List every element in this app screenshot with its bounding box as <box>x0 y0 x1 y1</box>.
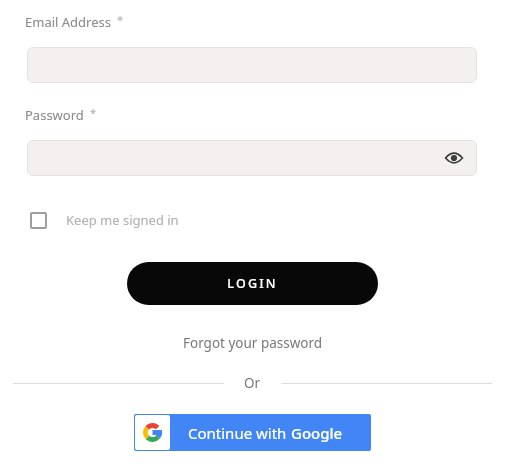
button[interactable]: Keep me signed in <box>24 206 185 234</box>
staticText: LOGIN <box>227 275 278 292</box>
staticText: Password <box>25 106 84 124</box>
staticText: Forgot your password <box>183 334 323 352</box>
staticText: Email Address <box>25 13 111 31</box>
button[interactable] <box>27 47 477 83</box>
staticText: Or <box>244 374 261 392</box>
button[interactable]: Continue with <box>134 414 371 451</box>
button[interactable]: Forgot your password <box>175 331 331 355</box>
staticText: * <box>90 105 97 120</box>
button[interactable]: LOGIN <box>127 262 378 305</box>
staticText: Keep me signed in <box>66 211 179 229</box>
staticText: Continue with <box>188 423 291 443</box>
staticText: Google <box>291 423 343 443</box>
button[interactable]: Show password <box>443 147 465 169</box>
button[interactable]: Show password <box>27 140 477 176</box>
staticText: * <box>117 12 124 27</box>
